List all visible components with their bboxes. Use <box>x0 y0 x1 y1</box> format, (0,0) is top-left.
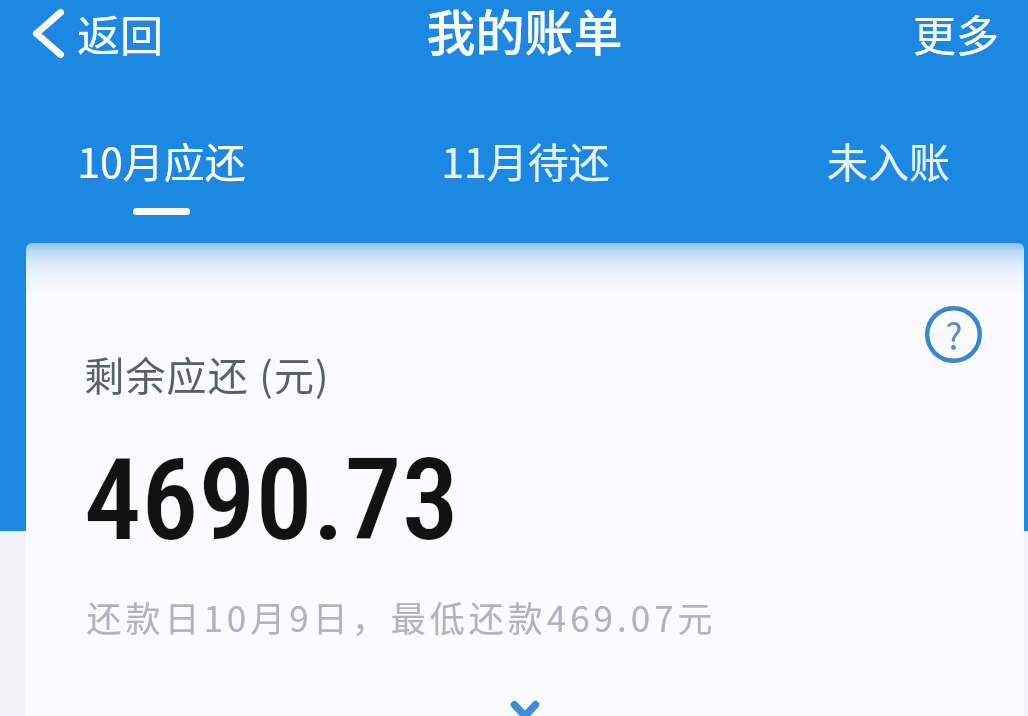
button[interactable]: Expand <box>505 700 545 716</box>
button[interactable]: 10月应还 <box>31 118 291 226</box>
staticText: ? <box>945 308 963 360</box>
button[interactable]: 未入账 <box>758 118 1018 226</box>
button[interactable]: Help <box>920 301 987 368</box>
staticText: 还款日10月9日，最低还款469.07元 <box>86 591 717 642</box>
button[interactable]: 更多 <box>891 0 1028 64</box>
staticText: 我的账单 <box>426 0 623 58</box>
staticText: 返回 <box>77 2 163 58</box>
staticText: 剩余应还 (元) <box>84 345 330 403</box>
staticText: 10月应还 <box>77 130 246 189</box>
staticText: 未入账 <box>827 130 950 189</box>
button[interactable]: 11月待还 <box>395 118 655 226</box>
staticText: 4690.73 <box>84 433 459 567</box>
staticText: 更多 <box>913 2 999 58</box>
staticText: 11月待还 <box>441 130 610 189</box>
button[interactable]: 返回 <box>0 0 181 64</box>
